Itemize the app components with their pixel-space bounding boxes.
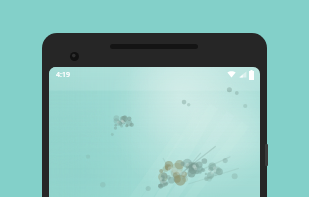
other: Wi-Fi <box>227 70 236 79</box>
button[interactable]: Power button <box>265 144 268 166</box>
staticText: 4:19 <box>56 70 70 80</box>
other: Mobile signal <box>238 70 247 79</box>
other: Battery <box>249 70 254 80</box>
button[interactable]: 4:19 <box>42 33 267 197</box>
